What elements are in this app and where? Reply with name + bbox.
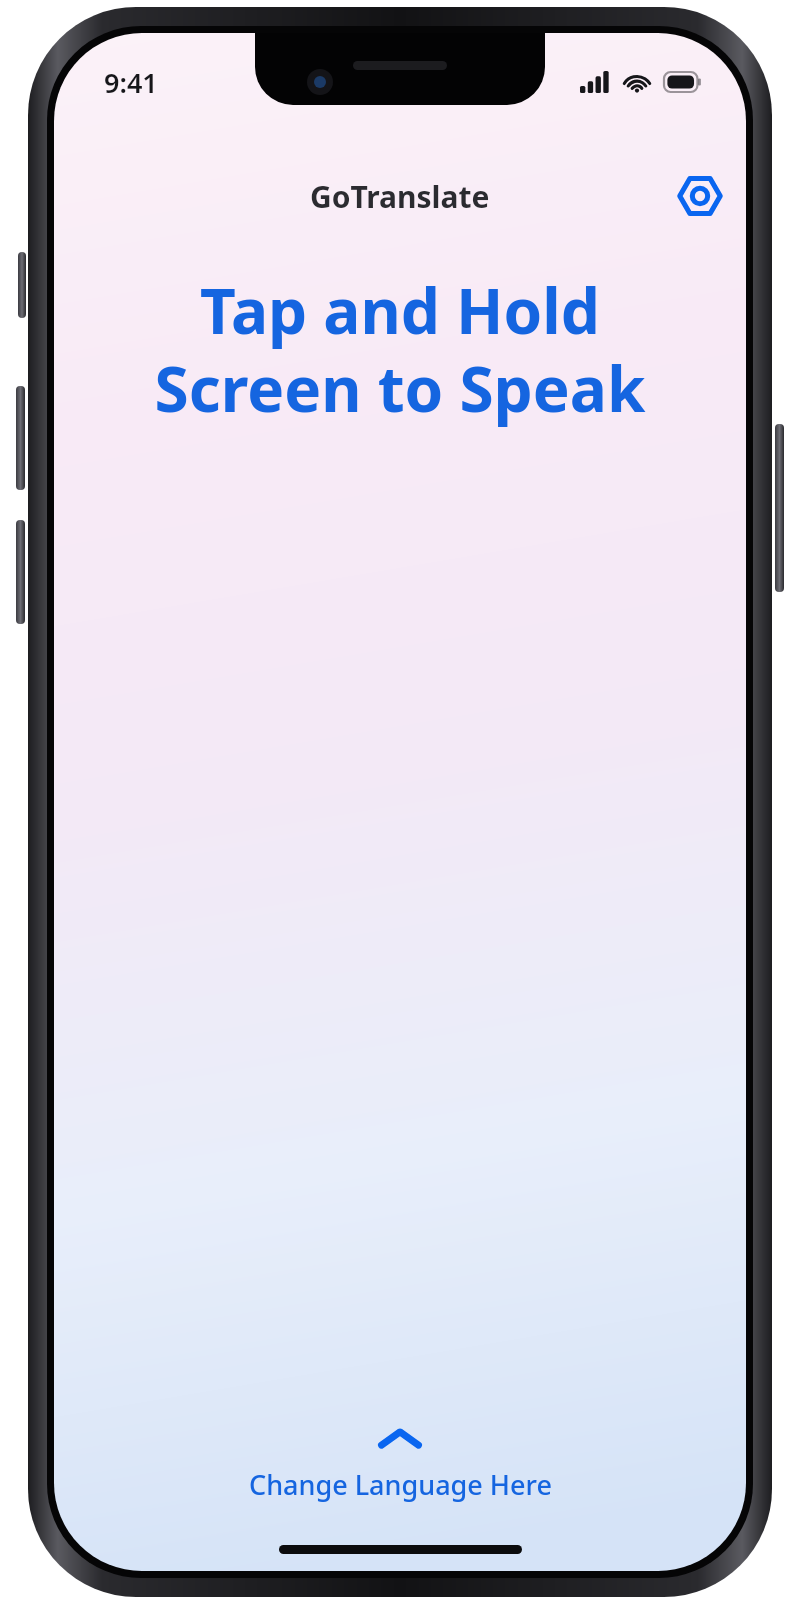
staticText: GoTranslate — [310, 176, 490, 217]
staticText: Change Language Here — [249, 1466, 552, 1503]
button[interactable]: Change Language Here — [54, 1422, 746, 1509]
button[interactable]: Tap and Hold Screen to Speak — [82, 268, 718, 430]
button[interactable]: Settings — [674, 171, 726, 221]
staticText: 9:41 — [104, 64, 158, 101]
